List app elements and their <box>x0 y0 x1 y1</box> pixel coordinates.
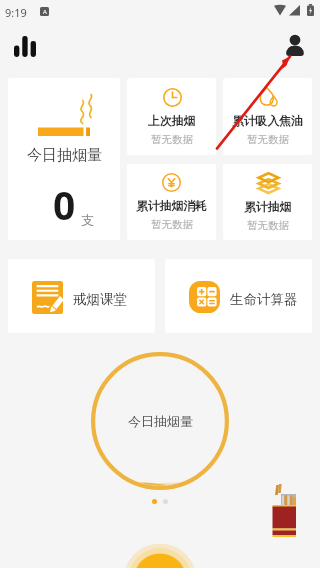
staticText: 暂无数据 <box>151 133 193 146</box>
button[interactable]: 生命计算器 <box>165 259 312 333</box>
button[interactable]: 累计吸入焦油 <box>223 78 312 155</box>
staticText: 累计吸入焦油 <box>232 114 303 129</box>
staticText: 今日抽烟量 <box>128 413 193 429</box>
button[interactable]: 上次抽烟 <box>127 78 216 155</box>
button[interactable]: Record smoking <box>126 546 194 568</box>
staticText: 上次抽烟 <box>148 114 196 129</box>
staticText: 9:19 <box>5 5 27 20</box>
staticText: 累计抽烟消耗 <box>136 199 207 214</box>
staticText: 0 <box>53 178 76 231</box>
button[interactable]: Statistics <box>8 29 42 63</box>
button[interactable]: 累计抽烟 <box>223 164 312 240</box>
staticText: A <box>43 8 47 16</box>
staticText: 暂无数据 <box>247 133 289 146</box>
staticText: 累计抽烟 <box>244 200 292 215</box>
staticText: 今日抽烟量 <box>27 146 102 165</box>
staticText: 戒烟课堂 <box>73 291 127 308</box>
staticText: 暂无数据 <box>151 218 193 231</box>
button[interactable]: 累计抽烟消耗 <box>127 164 216 240</box>
staticText: 生命计算器 <box>230 291 298 308</box>
staticText: 暂无数据 <box>247 219 289 232</box>
button[interactable]: 今日抽烟量 <box>8 78 120 240</box>
button[interactable]: Account <box>278 28 312 62</box>
button[interactable]: 戒烟课堂 <box>8 259 155 333</box>
staticText: 支 <box>81 212 94 228</box>
